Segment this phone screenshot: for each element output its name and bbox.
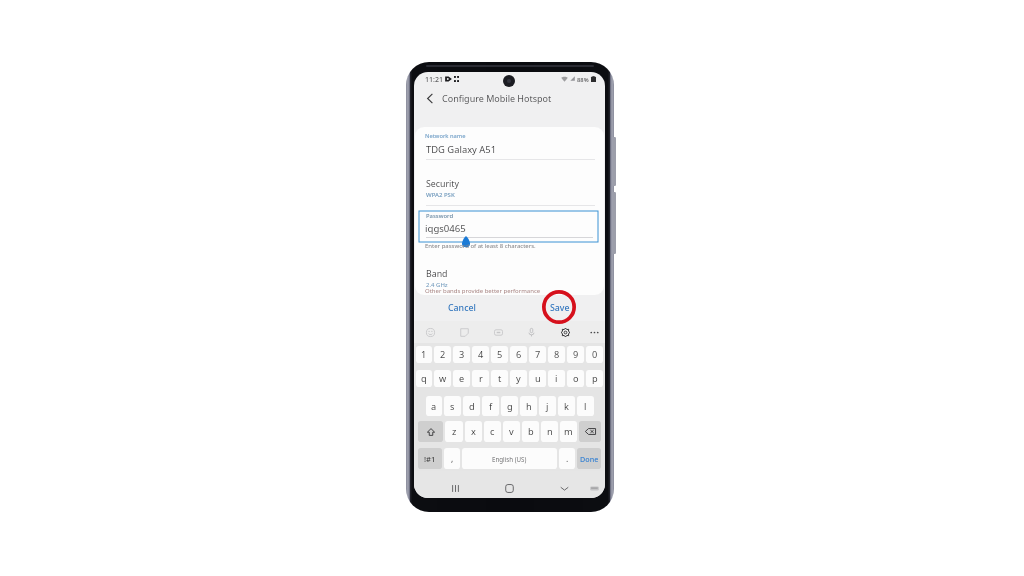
staticText: !#1: [424, 454, 436, 464]
button[interactable]: y: [510, 370, 527, 387]
button[interactable]: Settings: [557, 324, 574, 341]
staticText: Password: [426, 212, 454, 220]
staticText: n: [547, 425, 553, 438]
staticText: l: [584, 400, 587, 413]
staticText: z: [452, 425, 457, 438]
button[interactable]: More options: [586, 324, 603, 341]
staticText: e: [459, 372, 465, 385]
button[interactable]: 7: [529, 346, 546, 363]
button[interactable]: c: [484, 421, 501, 442]
button[interactable]: 2: [434, 346, 451, 363]
staticText: a: [431, 400, 437, 413]
button[interactable]: p: [586, 370, 603, 387]
button[interactable]: Done: [577, 448, 601, 469]
staticText: TDG Galaxy A51: [426, 143, 497, 156]
button[interactable]: k: [558, 396, 575, 416]
button[interactable]: Password: [419, 211, 598, 242]
button[interactable]: .: [559, 448, 575, 469]
staticText: Cancel: [448, 302, 476, 314]
staticText: u: [535, 372, 541, 385]
button[interactable]: h: [520, 396, 537, 416]
button[interactable]: 9: [567, 346, 584, 363]
button[interactable]: !#1: [418, 448, 442, 469]
button[interactable]: r: [472, 370, 489, 387]
staticText: k: [564, 400, 569, 413]
button[interactable]: m: [560, 421, 577, 442]
button[interactable]: o: [567, 370, 584, 387]
staticText: s: [450, 400, 455, 413]
staticText: Network name: [425, 132, 466, 140]
staticText: 9: [573, 348, 579, 361]
staticText: .: [566, 453, 569, 465]
button[interactable]: 3: [453, 346, 470, 363]
staticText: v: [509, 425, 514, 438]
button[interactable]: 5: [491, 346, 508, 363]
button[interactable]: Emoji: [422, 324, 439, 341]
staticText: 3: [459, 348, 465, 361]
staticText: iqgs0465: [425, 222, 466, 235]
button[interactable]: Stickers: [456, 324, 473, 341]
button[interactable]: Backspace: [579, 421, 601, 442]
button[interactable]: Recent apps: [446, 479, 465, 498]
button[interactable]: 6: [510, 346, 527, 363]
button[interactable]: 1: [416, 346, 432, 363]
button[interactable]: i: [548, 370, 565, 387]
staticText: Configure Mobile Hotspot: [442, 92, 552, 104]
staticText: w: [439, 372, 447, 385]
button[interactable]: v: [503, 421, 520, 442]
button[interactable]: Hide keyboard: [555, 479, 574, 498]
button[interactable]: Shift: [418, 421, 443, 442]
staticText: o: [573, 372, 579, 385]
staticText: m: [564, 425, 573, 438]
staticText: 8: [554, 348, 560, 361]
button[interactable]: d: [463, 396, 480, 416]
staticText: h: [526, 400, 532, 413]
button[interactable]: u: [529, 370, 546, 387]
staticText: x: [471, 425, 476, 438]
staticText: Save: [550, 302, 570, 314]
staticText: b: [528, 425, 534, 438]
staticText: g: [507, 400, 513, 413]
button[interactable]: s: [444, 396, 461, 416]
button[interactable]: Change keyboard: [585, 479, 604, 498]
staticText: f: [489, 400, 493, 413]
button[interactable]: z: [445, 421, 463, 442]
staticText: p: [592, 372, 598, 385]
button[interactable]: Home: [500, 479, 519, 498]
staticText: 2: [440, 348, 446, 361]
button[interactable]: 8: [548, 346, 565, 363]
button[interactable]: 4: [472, 346, 489, 363]
button[interactable]: ,: [444, 448, 460, 469]
staticText: 4: [478, 348, 484, 361]
staticText: i: [555, 372, 558, 385]
staticText: 6: [516, 348, 522, 361]
staticText: 7: [535, 348, 541, 361]
button[interactable]: f: [482, 396, 499, 416]
button[interactable]: GIF: [490, 324, 507, 341]
button[interactable]: Back: [418, 87, 441, 110]
button[interactable]: g: [501, 396, 518, 416]
button[interactable]: q: [416, 370, 432, 387]
staticText: j: [546, 400, 549, 413]
button[interactable]: Voice input: [523, 324, 540, 341]
button[interactable]: l: [577, 396, 594, 416]
staticText: r: [479, 372, 483, 385]
button[interactable]: b: [522, 421, 539, 442]
button[interactable]: Cancel: [442, 300, 482, 316]
button[interactable]: Save: [542, 300, 577, 316]
button[interactable]: x: [465, 421, 482, 442]
staticText: c: [490, 425, 495, 438]
button[interactable]: a: [426, 396, 442, 416]
button[interactable]: n: [541, 421, 558, 442]
button[interactable]: e: [453, 370, 470, 387]
button[interactable]: 0: [586, 346, 603, 363]
button[interactable]: English (US): [462, 448, 557, 469]
staticText: 88%: [577, 76, 589, 84]
button[interactable]: t: [491, 370, 508, 387]
button[interactable]: w: [434, 370, 451, 387]
staticText: q: [421, 372, 427, 385]
staticText: 0: [592, 348, 598, 361]
button[interactable]: j: [539, 396, 556, 416]
staticText: 2.4 GHz: [426, 281, 448, 289]
staticText: 5: [497, 348, 503, 361]
